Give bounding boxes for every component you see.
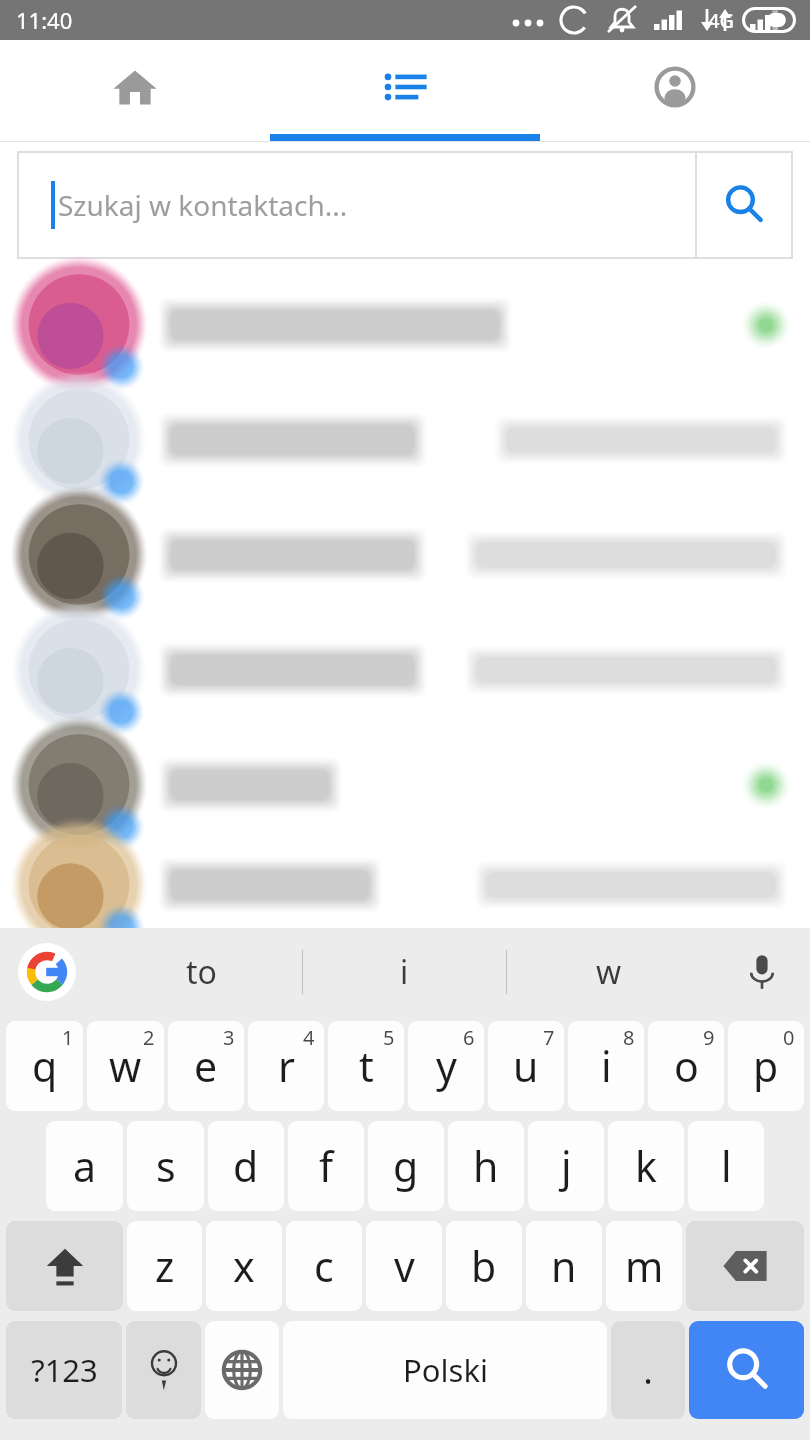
staticText: a [73, 1138, 97, 1194]
staticText: h [473, 1138, 499, 1194]
button[interactable]: Change language [205, 1321, 279, 1419]
button[interactable]: r [248, 1021, 324, 1111]
button[interactable]: Szukaj w kontaktach... [17, 151, 793, 259]
staticText: 3 [223, 1024, 235, 1051]
staticText: t [359, 1038, 374, 1094]
button[interactable]: s [127, 1121, 204, 1211]
button[interactable]: to [100, 928, 302, 1016]
button[interactable]: j [528, 1121, 604, 1211]
staticText: 7 [543, 1024, 555, 1051]
button[interactable]: y [408, 1021, 484, 1111]
staticText: f [319, 1138, 334, 1194]
button[interactable]: . [611, 1321, 685, 1419]
staticText: l [721, 1138, 732, 1194]
button[interactable]: o [648, 1021, 724, 1111]
staticText: i [601, 1038, 612, 1094]
button[interactable]: x [206, 1221, 282, 1311]
button[interactable] [0, 612, 810, 727]
button[interactable]: Google [18, 943, 76, 1001]
button[interactable]: Backspace [686, 1221, 804, 1311]
staticText: q [32, 1038, 58, 1094]
staticText: 5 [383, 1024, 395, 1051]
staticText: o [674, 1038, 699, 1094]
staticText: Polski [403, 1349, 488, 1391]
staticText: 0 [783, 1024, 795, 1051]
staticText: g [393, 1138, 419, 1194]
staticText: i [400, 950, 409, 994]
staticText: z [155, 1238, 175, 1294]
staticText: 4 [303, 1024, 315, 1051]
button[interactable] [0, 727, 810, 842]
staticText: m [625, 1238, 664, 1294]
staticText: ?123 [31, 1349, 98, 1391]
staticText: 8 [623, 1024, 635, 1051]
staticText: y [436, 1038, 457, 1094]
button[interactable] [0, 497, 810, 612]
staticText: e [194, 1038, 218, 1094]
button[interactable]: n [526, 1221, 602, 1311]
button[interactable]: ?123 [6, 1321, 122, 1419]
button[interactable]: Profile [540, 40, 810, 134]
button[interactable]: b [446, 1221, 522, 1311]
button[interactable]: h [448, 1121, 524, 1211]
staticText: 6 [463, 1024, 475, 1051]
staticText: 9 [703, 1024, 715, 1051]
staticText: n [551, 1238, 577, 1294]
staticText: c [314, 1238, 334, 1294]
button[interactable]: Voice input [736, 946, 788, 998]
staticText: j [561, 1138, 572, 1194]
button[interactable]: Shift [6, 1221, 123, 1311]
button[interactable]: Search [695, 151, 793, 259]
button[interactable] [0, 382, 810, 497]
button[interactable] [0, 267, 810, 382]
button[interactable]: t [328, 1021, 404, 1111]
staticText: v [394, 1238, 415, 1294]
button[interactable]: w [507, 928, 710, 1016]
button[interactable]: Search [689, 1321, 804, 1419]
staticText: k [635, 1138, 657, 1194]
staticText: . [643, 1346, 653, 1395]
staticText: s [156, 1138, 176, 1194]
staticText: p [753, 1038, 779, 1094]
staticText: d [233, 1138, 259, 1194]
staticText: 4G [708, 7, 734, 34]
button[interactable]: Contacts list [270, 40, 540, 134]
staticText: b [471, 1238, 497, 1294]
button[interactable]: q [6, 1021, 83, 1111]
button[interactable]: Home [0, 40, 270, 134]
button[interactable]: z [127, 1221, 202, 1311]
button[interactable]: p [728, 1021, 804, 1111]
staticText: w [109, 1038, 142, 1094]
button[interactable]: e [168, 1021, 244, 1111]
button[interactable] [0, 842, 810, 928]
staticText: to [186, 950, 217, 994]
staticText: 1 [62, 1024, 74, 1051]
staticText: r [278, 1038, 295, 1094]
button[interactable]: m [606, 1221, 682, 1311]
staticText: 2 [143, 1024, 155, 1051]
button[interactable]: i [303, 928, 506, 1016]
button[interactable]: k [608, 1121, 684, 1211]
button[interactable]: a [46, 1121, 123, 1211]
staticText: x [233, 1238, 255, 1294]
button[interactable]: f [288, 1121, 364, 1211]
button[interactable]: d [208, 1121, 284, 1211]
staticText: Szukaj w kontaktach... [58, 186, 348, 224]
button[interactable]: Polski [283, 1321, 607, 1419]
button[interactable]: u [488, 1021, 564, 1111]
staticText: u [513, 1038, 539, 1094]
button[interactable]: i [568, 1021, 644, 1111]
button[interactable]: Emoji [126, 1321, 201, 1419]
button[interactable]: l [688, 1121, 764, 1211]
button[interactable]: c [286, 1221, 362, 1311]
button[interactable]: w [87, 1021, 164, 1111]
staticText: w [596, 950, 622, 994]
button[interactable]: g [368, 1121, 444, 1211]
button[interactable]: v [366, 1221, 442, 1311]
staticText: 11:40 [16, 5, 73, 35]
